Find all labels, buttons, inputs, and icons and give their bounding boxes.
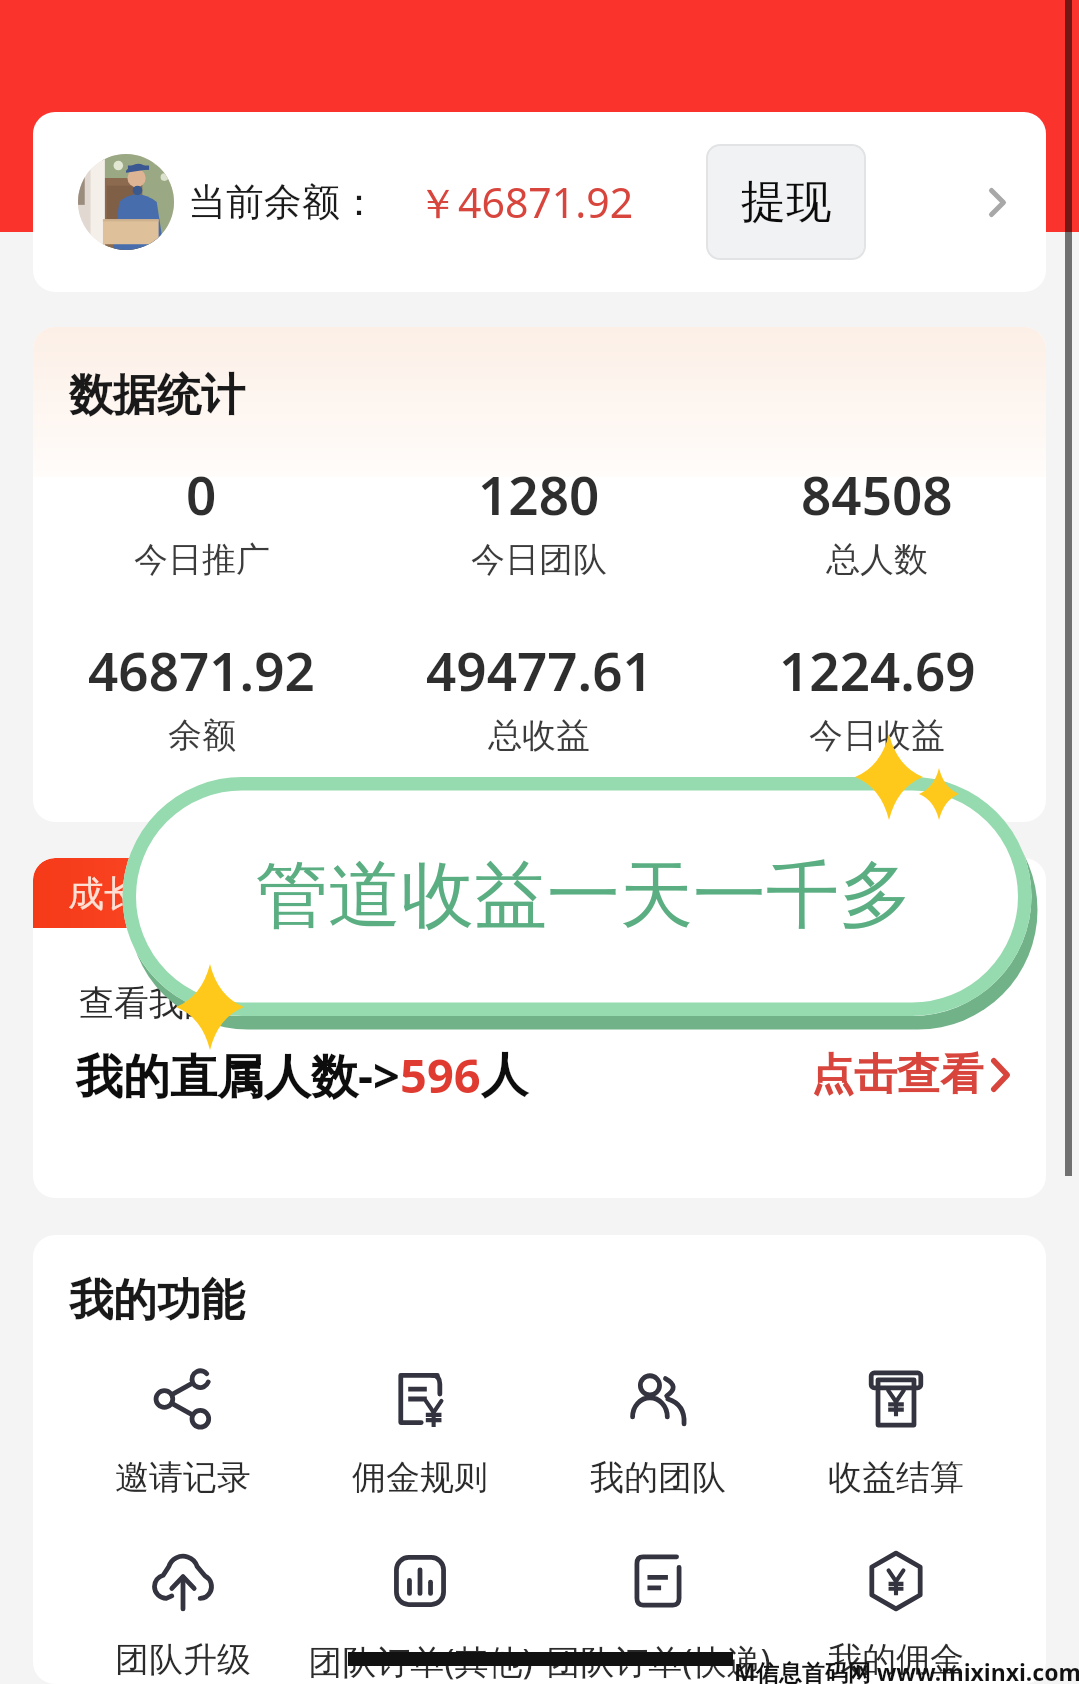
button[interactable]: 1224.69 <box>708 634 1046 757</box>
staticText: 46871.92 <box>88 634 315 706</box>
staticText: 0 <box>186 458 217 530</box>
staticText: 1280 <box>478 458 600 530</box>
staticText: 我的佣金 <box>828 1638 964 1681</box>
staticText: 邀请记录 <box>115 1456 251 1499</box>
staticText: 团队订单(其他) <box>308 1638 533 1684</box>
button[interactable]: 我的团队 <box>539 1368 777 1499</box>
button[interactable]: 0 <box>33 458 370 581</box>
button[interactable]: 收益结算 <box>777 1368 1015 1499</box>
staticText: 今日团队 <box>471 538 607 581</box>
staticText: 成长值 <box>68 871 176 916</box>
staticText: 49477.61 <box>426 634 653 706</box>
staticText: 我的团队 <box>590 1456 726 1499</box>
staticText: 我的功能 <box>69 1273 245 1328</box>
button[interactable]: 84508 <box>708 458 1046 581</box>
staticText: 人 <box>481 1046 528 1105</box>
button[interactable]: 点击查看 <box>811 1048 1010 1102</box>
button[interactable]: 团队订单(其他) <box>301 1550 539 1684</box>
staticText: 团队升级 <box>115 1638 251 1681</box>
staticText: 团队订单(快递) <box>546 1638 771 1684</box>
staticText: 596 <box>400 1043 481 1107</box>
button[interactable]: 邀请记录 <box>64 1368 301 1499</box>
staticText: 1224.69 <box>779 634 976 706</box>
button[interactable]: 我的佣金 <box>777 1550 1015 1681</box>
button[interactable]: 查看余额详情 <box>989 188 1006 217</box>
staticText: 今日推广 <box>134 538 270 581</box>
staticText: 总人数 <box>826 538 928 581</box>
staticText: ￥46871.92 <box>417 174 634 230</box>
staticText: 数据统计 <box>69 368 245 423</box>
button[interactable]: 团队升级 <box>64 1550 301 1681</box>
staticText: 当前余额： <box>188 178 378 226</box>
button[interactable]: 49477.61 <box>370 634 708 757</box>
staticText: 收益结算 <box>828 1456 964 1499</box>
staticText: 提现 <box>741 174 831 231</box>
staticText: 余额 <box>168 714 236 757</box>
staticText: M信息首码网 www.mixinxi.com <box>734 1656 1079 1684</box>
staticText: 总收益 <box>488 714 590 757</box>
staticText: 佣金规则 <box>352 1456 488 1499</box>
button[interactable]: 团队订单(快递) <box>539 1550 777 1684</box>
staticText: 点击查看 <box>811 1048 983 1102</box>
button[interactable]: 佣金规则 <box>301 1368 539 1499</box>
button[interactable]: 提现 <box>706 144 866 260</box>
staticText: 我的直属人数-> <box>76 1043 400 1107</box>
button[interactable]: 当前余额： <box>33 112 1046 292</box>
button[interactable]: 46871.92 <box>33 634 370 757</box>
staticText: 84508 <box>801 458 953 530</box>
button[interactable]: 1280 <box>370 458 708 581</box>
staticText: 今日收益 <box>809 714 945 757</box>
staticText: 管道收益一天一千多 <box>255 850 912 942</box>
staticText: 查看我的成长值 <box>79 981 324 1025</box>
button[interactable]: 成长值 <box>33 858 210 928</box>
